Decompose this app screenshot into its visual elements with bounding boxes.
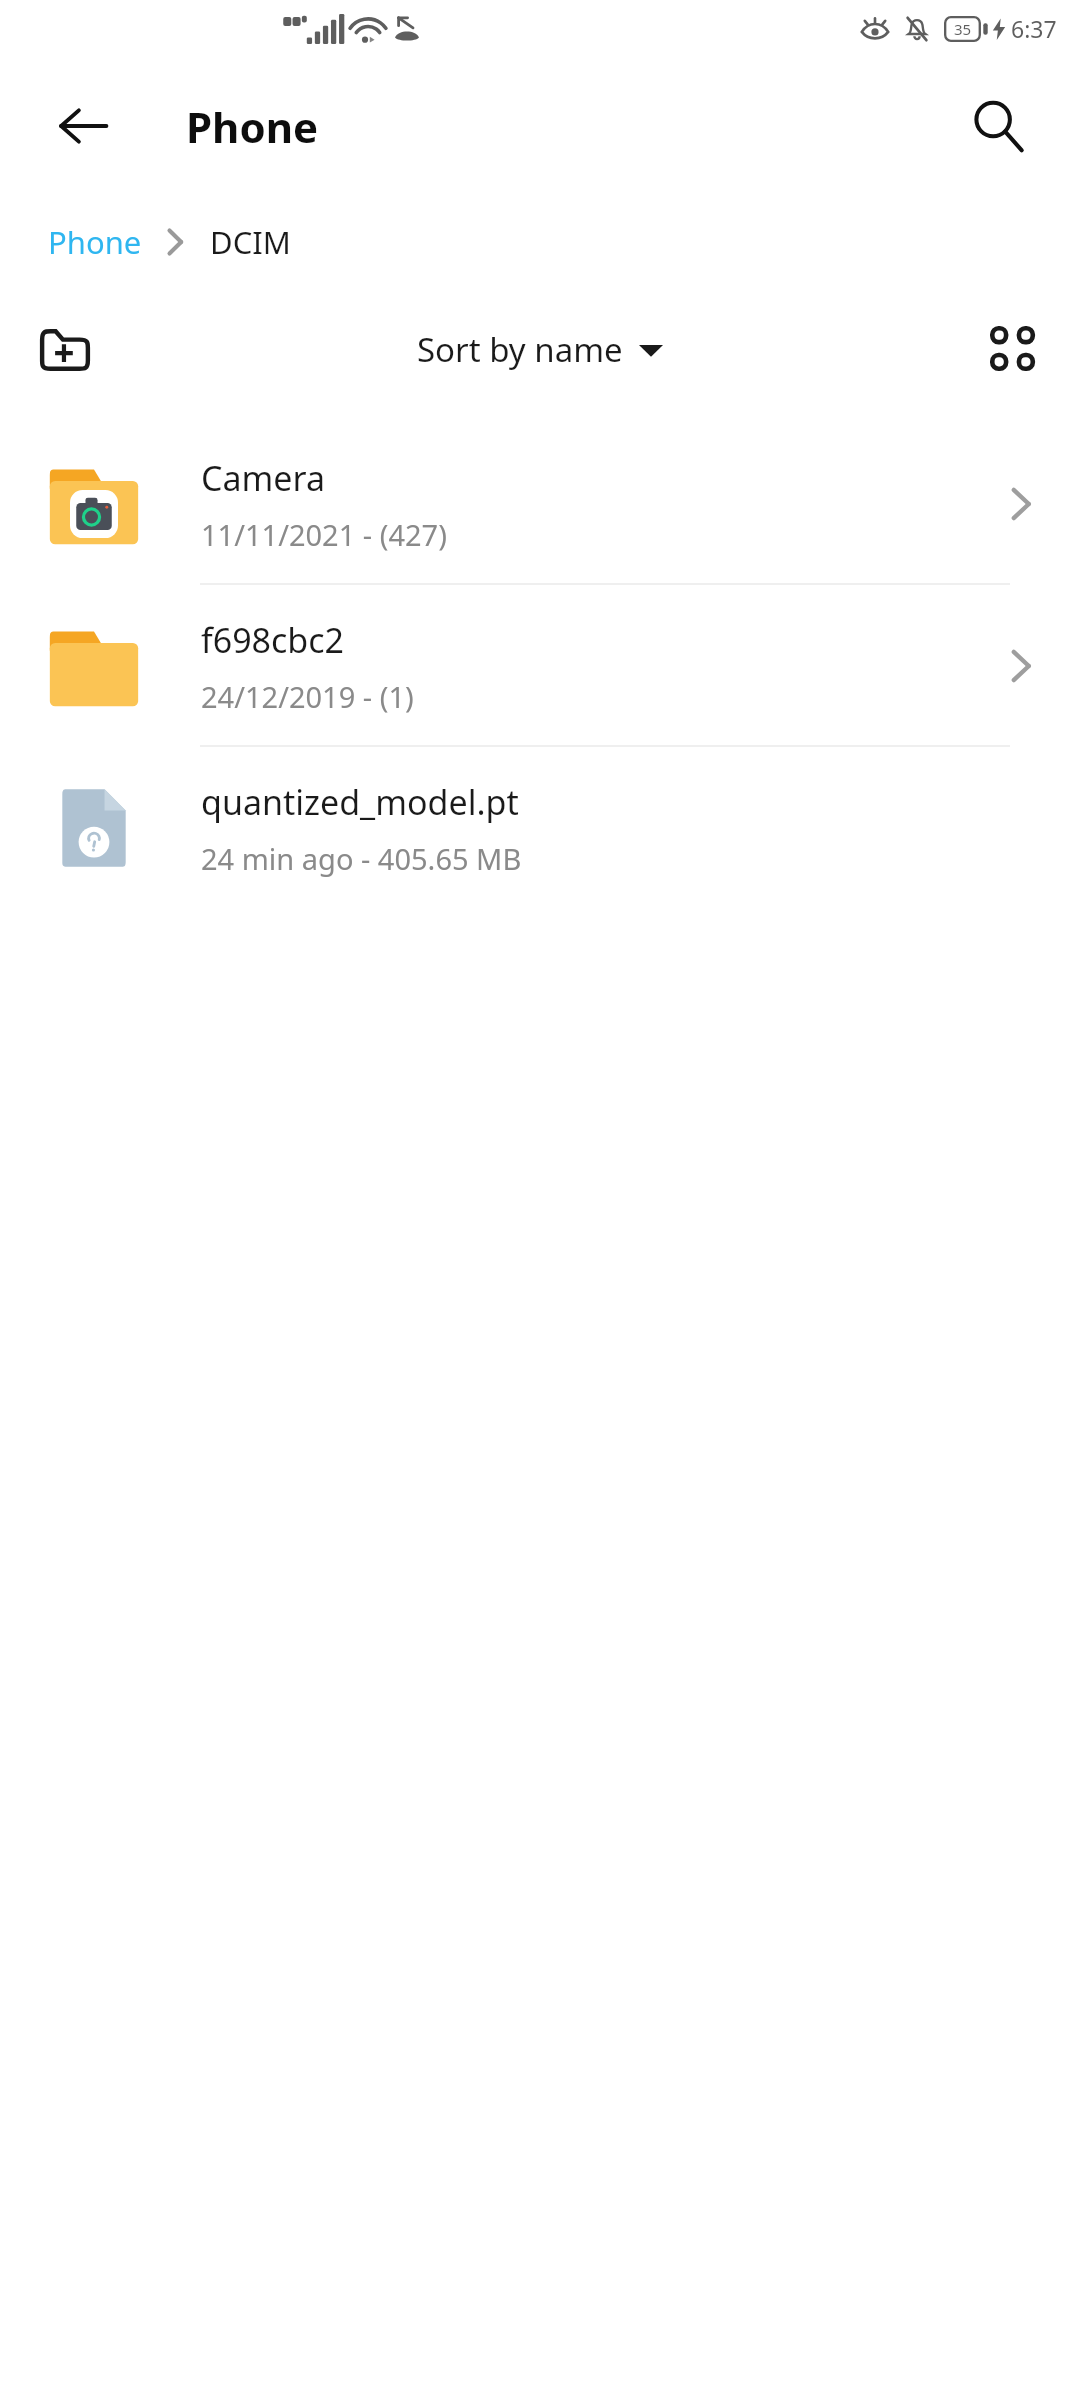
button[interactable]: f698cbc2 bbox=[0, 585, 1080, 747]
staticText: Camera bbox=[201, 455, 325, 501]
staticText: 24 min ago - 405.65 MB bbox=[201, 839, 522, 878]
button[interactable]: DCIM bbox=[208, 217, 293, 267]
button[interactable]: quantized_model.pt bbox=[0, 747, 1080, 909]
staticText: 24/12/2019 - (1) bbox=[201, 677, 414, 716]
staticText: Phone bbox=[48, 221, 142, 263]
staticText: Phone bbox=[186, 98, 319, 155]
button[interactable]: New folder bbox=[24, 308, 106, 390]
button[interactable]: Phone bbox=[46, 217, 144, 267]
button[interactable]: Sort by name bbox=[403, 319, 677, 380]
button[interactable]: Camera bbox=[0, 423, 1080, 585]
staticText: Sort by name bbox=[417, 327, 623, 372]
staticText: quantized_model.pt bbox=[201, 779, 519, 825]
button[interactable]: Search bbox=[960, 88, 1036, 164]
button[interactable]: Back bbox=[48, 91, 118, 161]
staticText: 11/11/2021 - (427) bbox=[201, 515, 447, 554]
button[interactable]: Grid view bbox=[972, 308, 1054, 390]
staticText: 6:37 bbox=[1011, 13, 1057, 44]
staticText: 35 bbox=[954, 19, 972, 39]
staticText: DCIM bbox=[210, 221, 291, 263]
staticText: f698cbc2 bbox=[201, 617, 345, 663]
